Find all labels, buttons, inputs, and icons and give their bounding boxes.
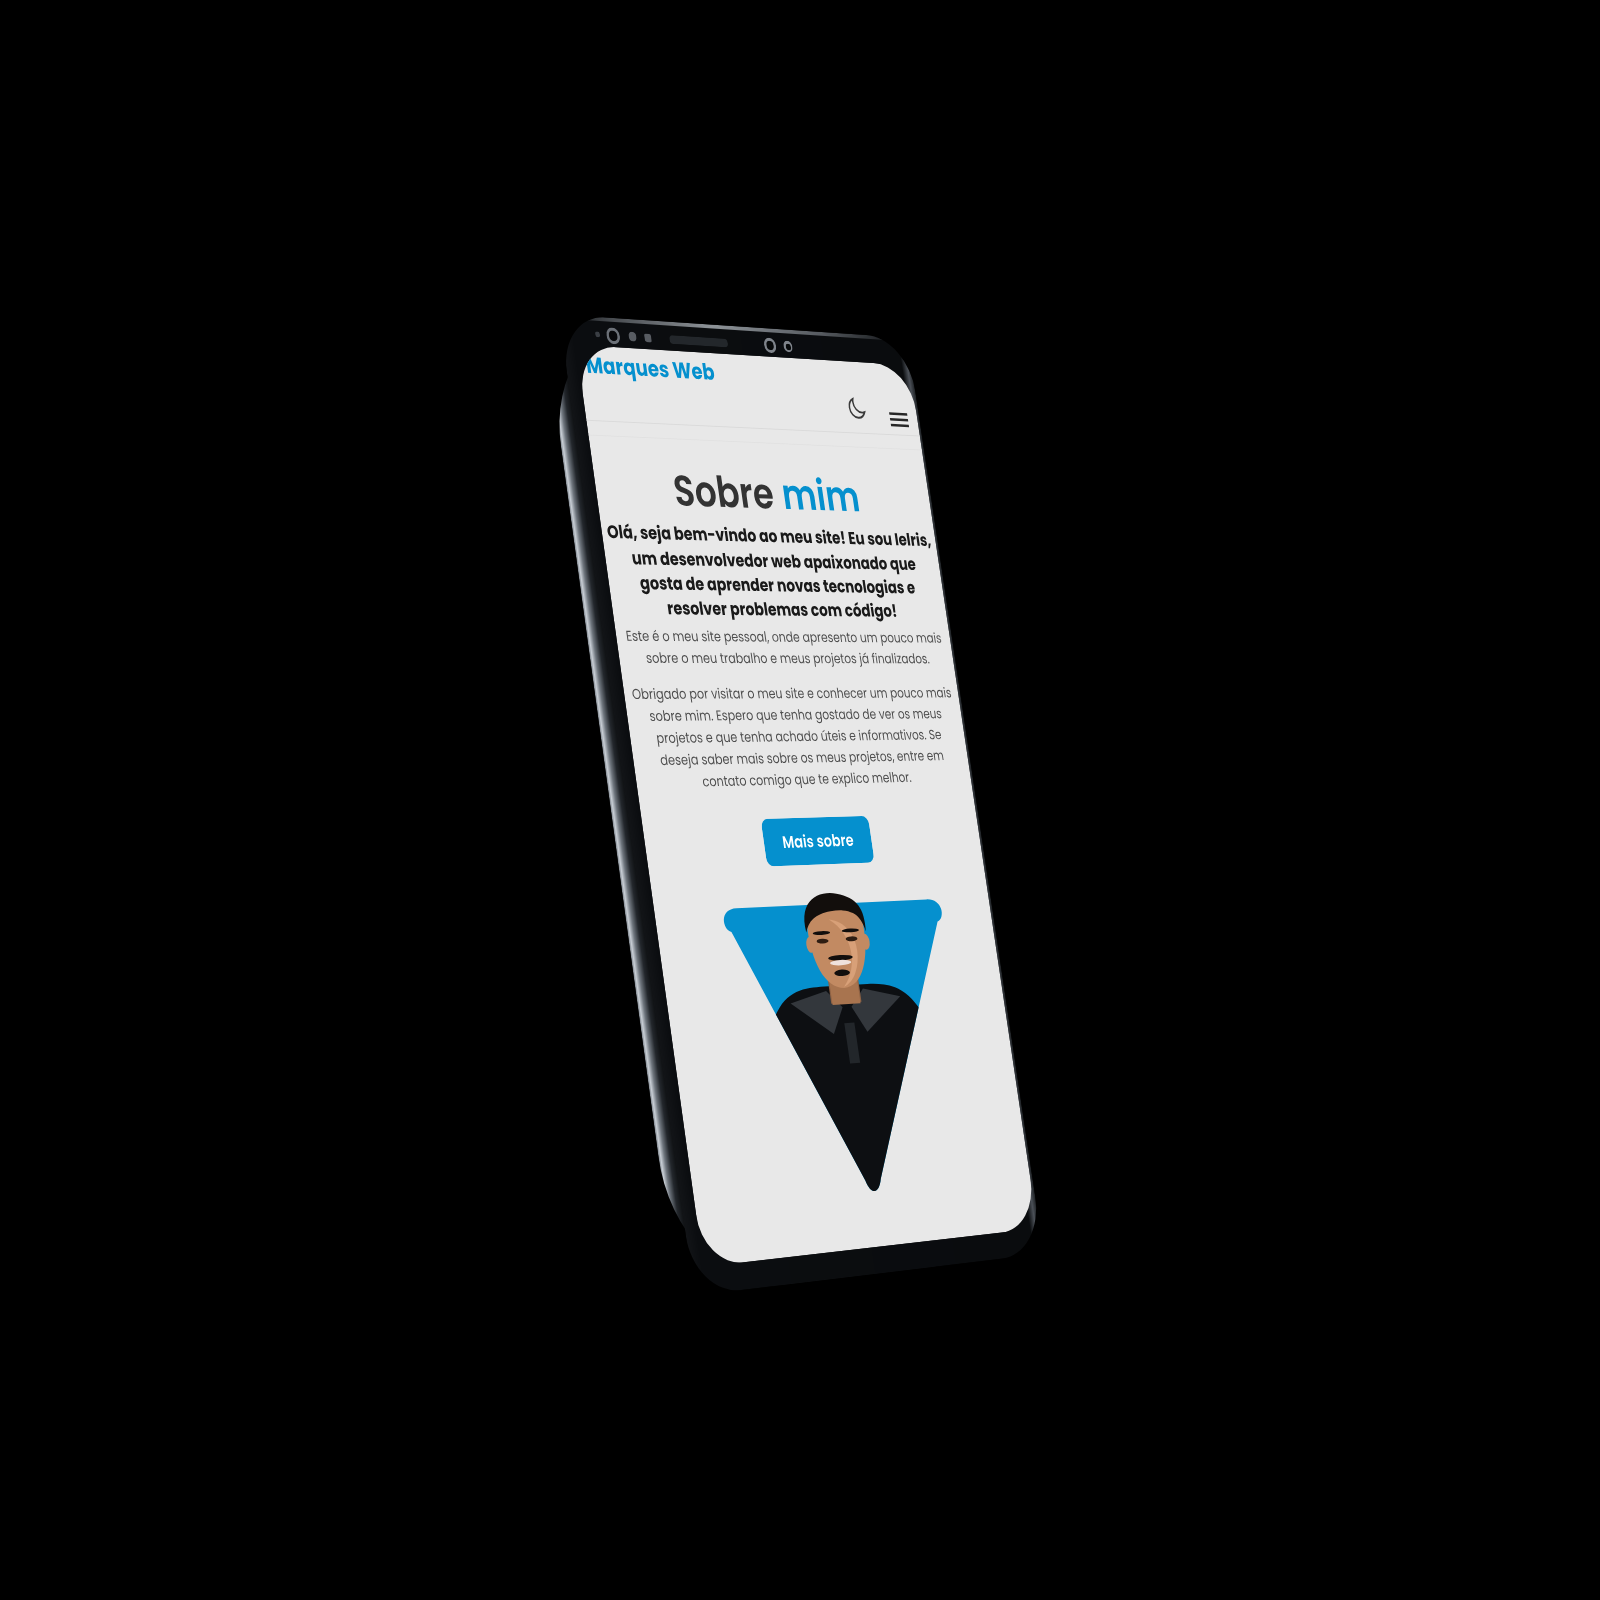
staticText: Sobre [669,460,786,524]
staticText: Mais sobre [781,828,855,854]
button[interactable]: Toggle dark mode [852,402,880,434]
staticText: Obrigado por visitar o meu site e conhec… [628,683,967,793]
staticText: Olá, seja bem-vindo ao meu site! Eu sou … [604,519,944,623]
button[interactable]: Marques Web [584,349,717,388]
staticText: mim [778,465,864,526]
button[interactable]: Open menu [885,404,913,435]
staticText: Este é o meu site pessoal, onde apresent… [620,626,949,668]
button[interactable]: Mais sobre [760,816,875,867]
